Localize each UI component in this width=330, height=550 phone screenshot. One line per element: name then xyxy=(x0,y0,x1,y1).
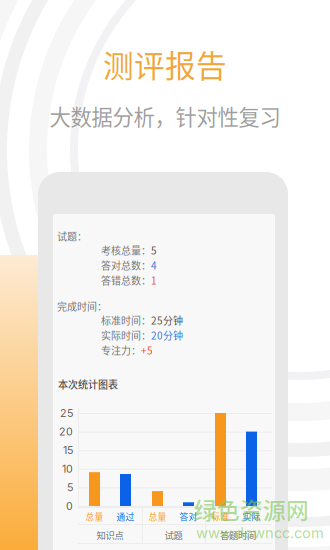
staticText: 25分钟 xyxy=(151,313,183,327)
staticText: 20分钟 xyxy=(151,328,183,342)
staticText: 答对 xyxy=(179,510,197,523)
staticText: 答题时间 xyxy=(220,528,256,542)
staticText: 绿色资源网 xyxy=(194,493,309,525)
staticText: 10 xyxy=(62,462,73,475)
staticText: 答对总数： xyxy=(101,258,151,272)
staticText: 1 xyxy=(151,273,157,287)
staticText: 知识点 xyxy=(96,528,123,542)
staticText: 20 xyxy=(59,425,73,438)
staticText: 4 xyxy=(151,258,157,272)
staticText: 5 xyxy=(151,243,157,257)
staticText: 测评报告 xyxy=(103,42,227,86)
staticText: 大数据分析，针对性复习 xyxy=(49,101,280,131)
staticText: 标准 xyxy=(211,510,229,523)
staticText: 试题 xyxy=(164,528,182,542)
staticText: 标准时间： xyxy=(101,313,151,327)
staticText: 总量 xyxy=(148,510,166,523)
staticText: 试题： xyxy=(57,229,87,243)
staticText: 完成时间： xyxy=(57,299,107,313)
staticText: 考核总量： xyxy=(101,243,151,257)
staticText: 5 xyxy=(67,481,73,494)
staticText: 实际时间： xyxy=(101,328,151,342)
staticText: 总量 xyxy=(85,510,103,523)
staticText: 通过 xyxy=(116,510,134,523)
staticText: 15 xyxy=(63,444,73,457)
staticText: 0 xyxy=(66,499,73,512)
staticText: 实际 xyxy=(242,510,260,523)
staticText: www.downcc.com xyxy=(196,524,324,542)
staticText: 本次统计图表 xyxy=(58,377,118,391)
staticText: 专注力： xyxy=(101,343,141,357)
staticText: +5 xyxy=(141,343,153,357)
staticText: 答错总数： xyxy=(101,273,151,287)
staticText: 25 xyxy=(60,406,73,419)
